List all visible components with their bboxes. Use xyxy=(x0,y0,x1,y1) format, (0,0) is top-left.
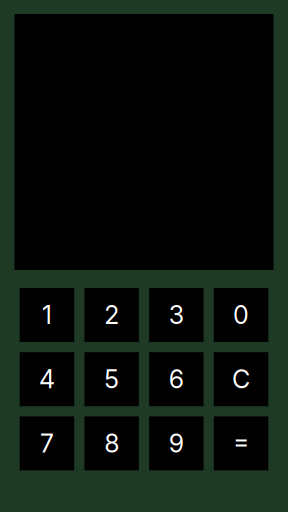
button[interactable]: 9 xyxy=(149,416,204,470)
button[interactable]: 8 xyxy=(84,416,139,470)
staticText: 3 xyxy=(169,300,184,330)
button[interactable]: 1 xyxy=(20,288,74,342)
button[interactable]: Equals xyxy=(214,416,268,470)
button[interactable]: 4 xyxy=(20,352,74,406)
staticText: 2 xyxy=(104,300,119,330)
button[interactable]: 7 xyxy=(20,416,74,470)
staticText: 7 xyxy=(40,428,54,458)
button[interactable]: 6 xyxy=(149,352,204,406)
staticText: 6 xyxy=(169,364,184,394)
button[interactable]: 5 xyxy=(84,352,139,406)
staticText: 4 xyxy=(39,364,55,394)
staticText: 9 xyxy=(169,428,184,458)
staticText: 8 xyxy=(104,428,119,458)
staticText: 0 xyxy=(233,300,249,330)
staticText: = xyxy=(233,426,249,456)
staticText: 1 xyxy=(42,300,52,330)
button[interactable]: 2 xyxy=(84,288,139,342)
button[interactable]: 3 xyxy=(149,288,204,342)
button[interactable]: 0 xyxy=(214,288,268,342)
staticText: 5 xyxy=(104,364,119,394)
staticText: C xyxy=(232,364,250,394)
button[interactable]: Clear xyxy=(214,352,268,406)
